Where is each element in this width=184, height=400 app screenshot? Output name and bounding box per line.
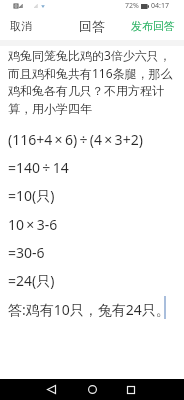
staticText: (116+4 × 6) ÷ (4 × 3+2) =140 ÷ 14 =10(只)… bbox=[8, 130, 170, 319]
button[interactable]: Recent apps bbox=[113, 379, 149, 400]
button[interactable]: Back bbox=[33, 379, 69, 400]
button[interactable]: 取消 bbox=[0, 13, 42, 39]
button[interactable]: Home bbox=[74, 379, 110, 400]
staticText: 发布回答 bbox=[131, 19, 175, 33]
staticText: 04:17 bbox=[151, 1, 169, 11]
button[interactable]: 发布回答 bbox=[121, 13, 184, 39]
staticText: 72% bbox=[125, 1, 139, 11]
staticText: 取消 bbox=[10, 19, 32, 33]
staticText: 鸡兔同笼兔比鸡的3倍少六只，而且鸡和兔共有116条腿，那么鸡和兔各有几只？不用方… bbox=[8, 47, 174, 117]
staticText: 回答 bbox=[79, 18, 105, 34]
